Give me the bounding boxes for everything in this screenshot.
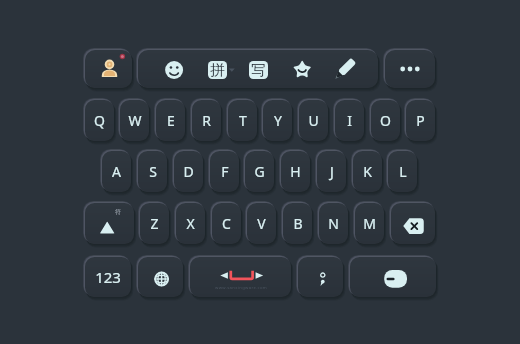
- button[interactable]: B: [283, 203, 312, 244]
- staticText: Y: [274, 111, 282, 130]
- staticText: E: [167, 111, 175, 130]
- staticText: L: [399, 162, 407, 181]
- button[interactable]: Punctuation: [298, 257, 343, 297]
- button[interactable]: O: [371, 100, 400, 141]
- button[interactable]: T: [228, 100, 257, 141]
- button[interactable]: H: [281, 151, 310, 192]
- staticText: Z: [150, 214, 159, 233]
- button[interactable]: A: [102, 151, 131, 192]
- staticText: 123: [95, 267, 121, 287]
- staticText: S: [149, 162, 157, 181]
- staticText: M: [363, 214, 376, 233]
- staticText: C: [222, 214, 231, 233]
- button[interactable]: Y: [263, 100, 292, 141]
- staticText: R: [202, 111, 211, 130]
- button[interactable]: P: [406, 100, 435, 141]
- button[interactable]: U: [299, 100, 328, 141]
- button[interactable]: Switch language: [138, 257, 183, 297]
- staticText: U: [308, 111, 319, 130]
- staticText: www.sanxingware.com: [215, 285, 268, 291]
- button[interactable]: L: [388, 151, 417, 192]
- staticText: B: [293, 214, 303, 233]
- staticText: K: [363, 162, 372, 181]
- staticText: N: [328, 214, 339, 233]
- button[interactable]: N: [319, 203, 348, 244]
- button[interactable]: W: [120, 100, 149, 141]
- button[interactable]: K: [353, 151, 382, 192]
- button[interactable]: R: [192, 100, 221, 141]
- button[interactable]: Account: [85, 50, 132, 88]
- staticText: H: [290, 162, 301, 181]
- staticText: Q: [94, 111, 105, 130]
- staticText: X: [186, 214, 195, 233]
- button[interactable]: E: [156, 100, 185, 141]
- staticText: J: [330, 162, 334, 181]
- staticText: P: [416, 111, 425, 130]
- button[interactable]: Backspace: [391, 203, 435, 244]
- button[interactable]: G: [245, 151, 274, 192]
- button[interactable]: J: [317, 151, 346, 192]
- button[interactable]: M: [355, 203, 384, 244]
- button[interactable]: F: [210, 151, 239, 192]
- button[interactable]: 123: [85, 257, 131, 297]
- button[interactable]: Input tools: [138, 50, 378, 88]
- staticText: W: [128, 111, 142, 130]
- button[interactable]: 写: [249, 61, 268, 79]
- staticText: D: [183, 162, 194, 181]
- staticText: 符: [115, 208, 121, 216]
- staticText: V: [257, 214, 266, 233]
- staticText: I: [347, 111, 352, 130]
- staticText: T: [239, 111, 247, 130]
- button[interactable]: Enter: [350, 257, 436, 297]
- button[interactable]: Shift: [85, 203, 134, 244]
- button[interactable]: C: [212, 203, 241, 244]
- staticText: F: [221, 162, 229, 181]
- button[interactable]: Space: [190, 257, 291, 297]
- staticText: 写: [251, 61, 266, 79]
- button[interactable]: V: [247, 203, 276, 244]
- button[interactable]: Q: [85, 100, 114, 141]
- button[interactable]: More options: [385, 50, 435, 88]
- button[interactable]: I: [335, 100, 364, 141]
- staticText: O: [380, 111, 391, 130]
- button[interactable]: D: [174, 151, 203, 192]
- button[interactable]: S: [138, 151, 167, 192]
- button[interactable]: Z: [140, 203, 169, 244]
- staticText: A: [112, 162, 121, 181]
- staticText: G: [254, 162, 265, 181]
- button[interactable]: 拼: [208, 61, 227, 79]
- button[interactable]: X: [176, 203, 205, 244]
- staticText: 拼: [210, 61, 225, 79]
